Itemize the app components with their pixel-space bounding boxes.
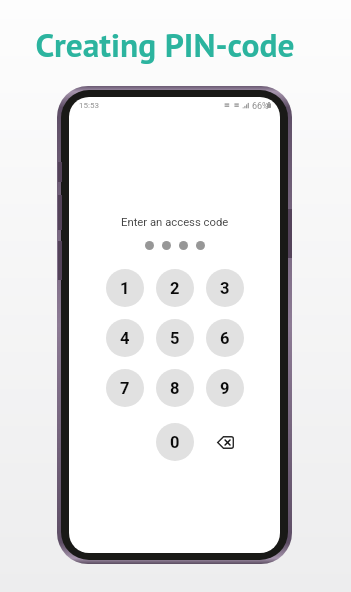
button[interactable]: 3 — [206, 269, 244, 307]
button[interactable]: Backspace — [206, 423, 244, 461]
staticText: 2 — [170, 279, 180, 298]
button[interactable]: 0 — [156, 423, 194, 461]
staticText: 66% — [252, 101, 269, 112]
button[interactable]: 7 — [106, 369, 144, 407]
button[interactable]: 6 — [206, 319, 244, 357]
staticText: Creating PIN-code — [35, 23, 295, 66]
button[interactable]: 2 — [156, 269, 194, 307]
staticText: 0 — [170, 433, 180, 452]
button[interactable]: 5 — [156, 319, 194, 357]
staticText: 9 — [220, 379, 230, 398]
button[interactable]: 4 — [106, 319, 144, 357]
staticText: Enter an access code — [121, 216, 229, 229]
staticText: 1 — [120, 279, 130, 298]
button[interactable]: 1 — [106, 269, 144, 307]
staticText: 4 — [120, 329, 130, 348]
staticText: 15:53 — [79, 101, 99, 110]
button[interactable]: 8 — [156, 369, 194, 407]
staticText: 6 — [220, 329, 230, 348]
button[interactable]: 9 — [206, 369, 244, 407]
staticText: 8 — [170, 379, 180, 398]
staticText: 5 — [170, 329, 180, 348]
staticText: 7 — [120, 379, 130, 398]
staticText: 3 — [220, 279, 230, 298]
